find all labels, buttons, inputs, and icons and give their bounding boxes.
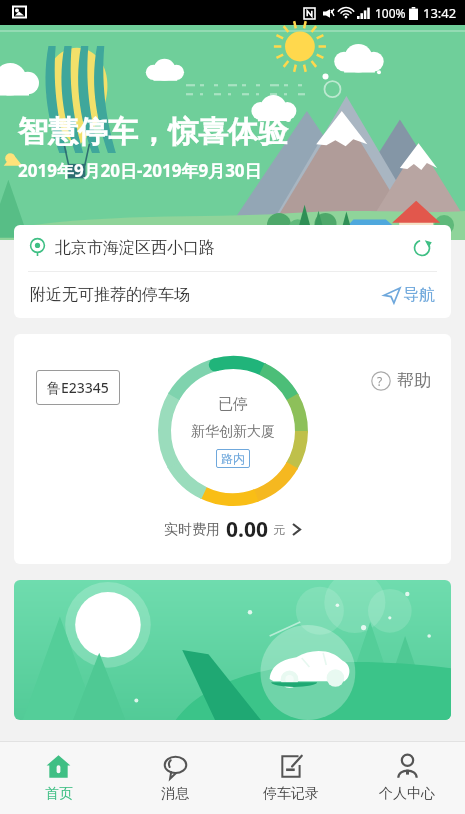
button[interactable]: 停车记录 <box>233 742 349 814</box>
staticText: 附近无可推荐的停车场 <box>30 285 190 305</box>
staticText: 13:42 <box>423 4 457 22</box>
staticText: 个人中心 <box>379 785 435 803</box>
staticText: 元 <box>273 522 285 537</box>
staticText: 帮助 <box>397 370 431 391</box>
staticText: 鲁E23345 <box>47 378 109 397</box>
staticText: 消息 <box>161 785 189 803</box>
button[interactable]: 鲁E23345 <box>14 334 451 564</box>
button[interactable]: 个人中心 <box>349 742 465 814</box>
staticText: 停车记录 <box>263 785 319 803</box>
button[interactable]: 北京市海淀区西小口路 <box>14 225 451 271</box>
button[interactable]: 实时费用 <box>164 515 301 544</box>
staticText: 0.00 <box>226 515 268 544</box>
staticText: 实时费用 <box>164 521 220 539</box>
staticText: 北京市海淀区西小口路 <box>55 238 215 258</box>
button[interactable]: Promotion banner <box>14 580 451 720</box>
button[interactable]: 消息 <box>117 742 233 814</box>
button[interactable]: 附近无可推荐的停车场 <box>14 272 451 318</box>
staticText: 智慧停车，惊喜体验 <box>18 113 288 151</box>
button[interactable]: Refresh location <box>409 235 435 261</box>
button[interactable]: ? <box>371 370 431 391</box>
button[interactable]: 鲁E23345 <box>36 370 120 405</box>
staticText: 导航 <box>403 285 435 305</box>
staticText: 首页 <box>45 785 73 803</box>
staticText: 100% <box>375 5 406 21</box>
staticText: 路内 <box>221 451 245 466</box>
button[interactable]: 首页 <box>0 742 117 814</box>
staticText: 已停 <box>218 395 248 414</box>
staticText: ? <box>377 373 383 389</box>
staticText: 新华创新大厦 <box>191 423 275 441</box>
staticText: 2019年9月20日-2019年9月30日 <box>18 159 262 182</box>
